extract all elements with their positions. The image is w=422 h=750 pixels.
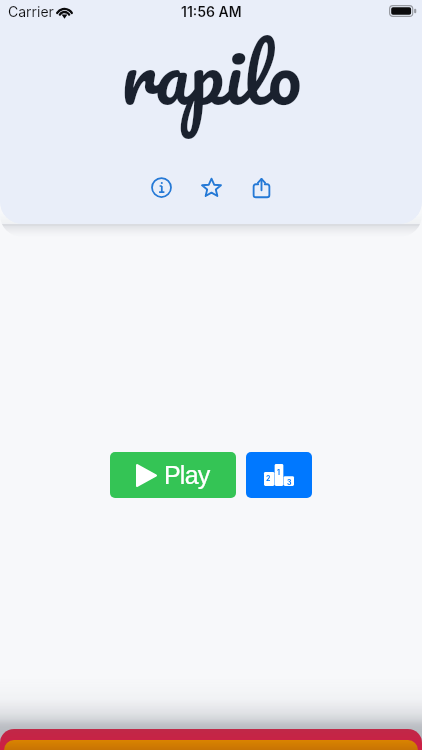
button[interactable]: Share xyxy=(245,171,277,203)
staticText: 11:56 AM xyxy=(181,3,242,20)
button[interactable]: Info xyxy=(145,171,177,203)
button[interactable]: Leaderboard xyxy=(246,452,312,498)
staticText: 2 xyxy=(266,474,271,482)
button[interactable]: Next card xyxy=(0,729,422,750)
staticText: 1 xyxy=(277,468,281,476)
button[interactable]: Favorite xyxy=(195,171,227,203)
staticText: Carrier xyxy=(8,3,54,20)
button[interactable]: Play xyxy=(110,452,236,498)
staticText: Play xyxy=(164,461,210,489)
staticText: rapilo xyxy=(121,9,301,139)
staticText: 3 xyxy=(287,478,292,486)
